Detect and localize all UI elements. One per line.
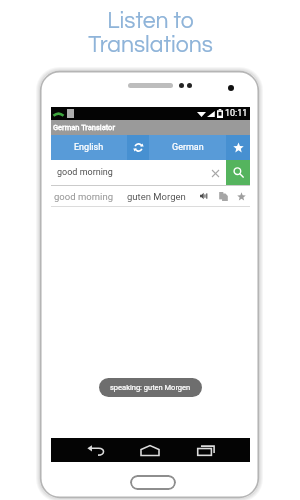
staticText: Translations	[88, 33, 213, 57]
staticText: Listen to	[107, 9, 194, 33]
button[interactable]: Back	[74, 438, 118, 462]
button[interactable]: Speak	[195, 186, 214, 206]
staticText: German	[172, 142, 204, 153]
staticText: 10:11	[225, 108, 248, 119]
button[interactable]: Home	[128, 438, 172, 462]
staticText: speaking: guten Morgen	[110, 383, 191, 392]
button[interactable]: German	[149, 135, 226, 160]
button[interactable]: Favorite	[232, 186, 250, 206]
button[interactable]: Clear	[204, 162, 226, 184]
staticText: guten Morgen	[127, 191, 186, 202]
staticText: good morning	[54, 191, 113, 202]
staticText: good morning	[57, 167, 113, 178]
button[interactable]: Recents	[184, 438, 228, 462]
button[interactable]: English	[51, 135, 127, 160]
button[interactable]: Search	[226, 160, 250, 185]
staticText: German Translator	[53, 123, 115, 132]
button[interactable]: good morning	[51, 186, 250, 206]
button[interactable]: Favorite	[226, 135, 250, 160]
staticText: English	[74, 142, 104, 153]
button[interactable]: Copy	[214, 186, 232, 206]
button[interactable]: Swap languages	[127, 135, 149, 160]
